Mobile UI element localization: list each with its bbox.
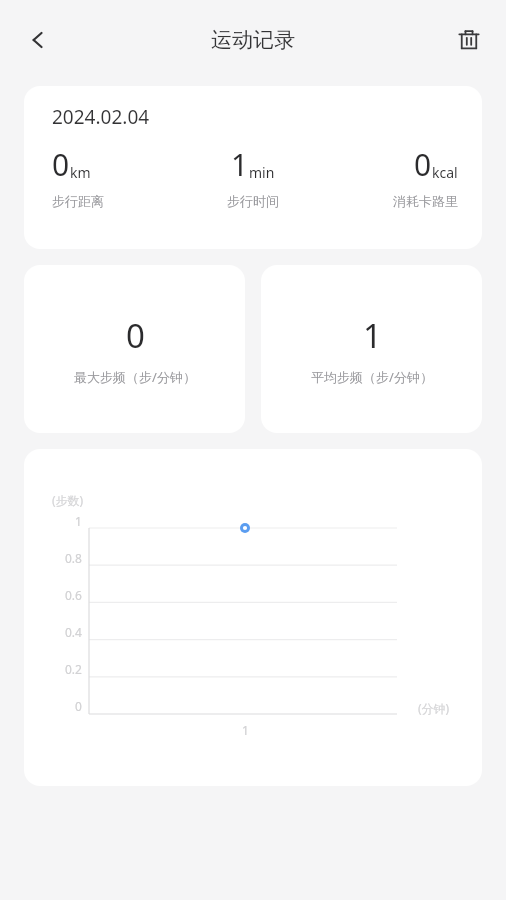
button[interactable]: 1 [261,265,482,433]
staticText: 1 [75,513,82,529]
staticText: kcal [432,163,458,182]
staticText: 0 [414,144,432,185]
button[interactable]: Delete [446,17,492,63]
staticText: 0.6 [65,587,82,603]
staticText: 0 [126,313,145,358]
staticText: 2024.02.04 [52,104,150,130]
staticText: 0.4 [65,624,82,640]
staticText: 1 [242,722,249,738]
staticText: 最大步频（步/分钟） [74,368,196,386]
staticText: 0.2 [65,661,82,677]
button[interactable]: Back [14,16,62,64]
button[interactable]: 2024.02.04 [24,86,482,249]
staticText: 消耗卡路里 [393,193,458,209]
staticText: (分钟) [418,700,450,716]
staticText: min [249,163,275,182]
staticText: 步行时间 [227,193,279,209]
staticText: (步数) [52,492,84,508]
staticText: 平均步频（步/分钟） [311,368,433,386]
staticText: 0.8 [65,550,82,566]
staticText: 1 [363,313,382,358]
staticText: 0 [75,698,82,714]
staticText: 步行距离 [52,193,104,209]
staticText: km [70,163,91,182]
button[interactable]: (步数) [24,449,482,786]
staticText: 运动记录 [211,27,295,53]
button[interactable]: 0 [24,265,245,433]
staticText: 1 [231,144,249,185]
staticText: 0 [52,144,70,185]
